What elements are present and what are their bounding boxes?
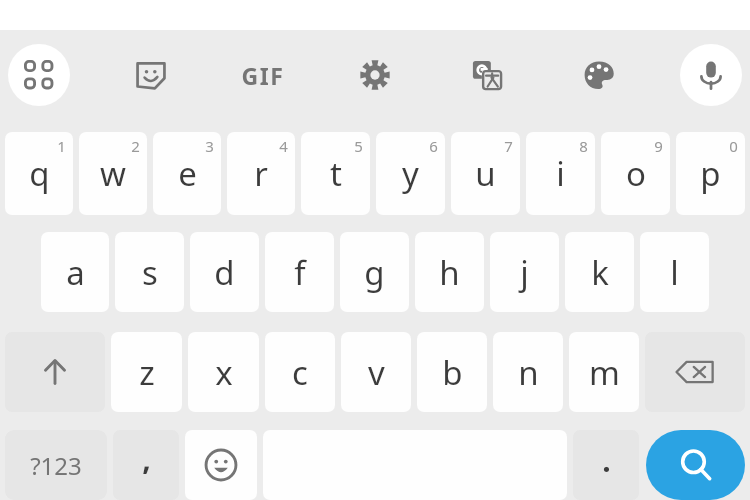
staticText: r [254,151,268,196]
button[interactable]: a [41,232,109,312]
button[interactable]: , [113,430,179,500]
button[interactable]: r [227,132,295,215]
button[interactable]: f [265,232,334,312]
staticText: b [442,350,463,395]
button[interactable]: k [565,232,634,312]
staticText: e [178,151,197,196]
button[interactable]: x [188,332,259,412]
button[interactable]: ?123 [5,430,107,500]
button[interactable]: c [265,332,335,412]
button[interactable]: z [111,332,182,412]
button[interactable]: l [640,232,709,312]
staticText: h [439,250,460,295]
staticText: c [292,350,308,395]
staticText: 8 [579,136,588,156]
staticText: i [556,151,565,196]
button[interactable]: n [493,332,563,412]
staticText: x [215,350,233,395]
button[interactable]: b [417,332,487,412]
staticText: q [29,151,50,196]
button[interactable]: m [569,332,639,412]
button[interactable]: Voice input [680,44,742,106]
button[interactable]: Backspace [645,332,745,412]
button[interactable]: y [376,132,445,215]
button[interactable]: h [415,232,484,312]
staticText: k [591,250,609,295]
staticText: . [602,440,611,481]
staticText: o [626,151,646,196]
staticText: 9 [654,136,663,156]
button[interactable]: t [301,132,370,215]
staticText: GIF [241,60,285,91]
staticText: , [142,438,151,479]
button[interactable]: d [190,232,259,312]
staticText: 2 [131,136,140,156]
button[interactable]: i [526,132,595,215]
button[interactable]: Shift [5,332,105,412]
button[interactable]: Emoji [185,430,257,500]
button[interactable]: w [79,132,147,215]
staticText: ?123 [30,449,82,482]
staticText: 4 [279,136,288,156]
staticText: n [518,350,539,395]
staticText: 0 [729,136,738,156]
button[interactable]: o [601,132,670,215]
button[interactable]: . [573,430,639,500]
staticText: y [402,151,419,196]
staticText: p [700,151,721,196]
staticText: j [520,250,529,295]
staticText: 3 [205,136,214,156]
button[interactable]: s [115,232,184,312]
button[interactable]: p [676,132,745,215]
button[interactable]: Themes [568,44,630,106]
button[interactable]: v [341,332,411,412]
staticText: u [475,151,496,196]
button[interactable]: Switch input [8,44,70,106]
staticText: v [368,350,385,395]
staticText: 1 [57,136,66,156]
staticText: 7 [504,136,513,156]
staticText: g [364,250,385,295]
button[interactable]: Settings [344,44,406,106]
staticText: d [214,250,235,295]
staticText: s [142,250,158,295]
button[interactable]: g [340,232,409,312]
staticText: f [294,250,306,295]
button[interactable]: q [5,132,73,215]
staticText: z [139,350,155,395]
staticText: 5 [354,136,363,156]
staticText: w [100,151,126,196]
staticText: l [670,250,679,295]
button[interactable]: Search [646,430,745,500]
button[interactable]: e [153,132,221,215]
staticText: t [330,151,342,196]
button[interactable]: u [451,132,520,215]
staticText: m [589,350,620,395]
button[interactable]: j [490,232,559,312]
staticText: a [66,250,85,295]
button[interactable]: Stickers [120,44,182,106]
staticText: 6 [429,136,438,156]
button[interactable]: Translate [456,44,518,106]
button[interactable]: GIF [232,44,294,106]
